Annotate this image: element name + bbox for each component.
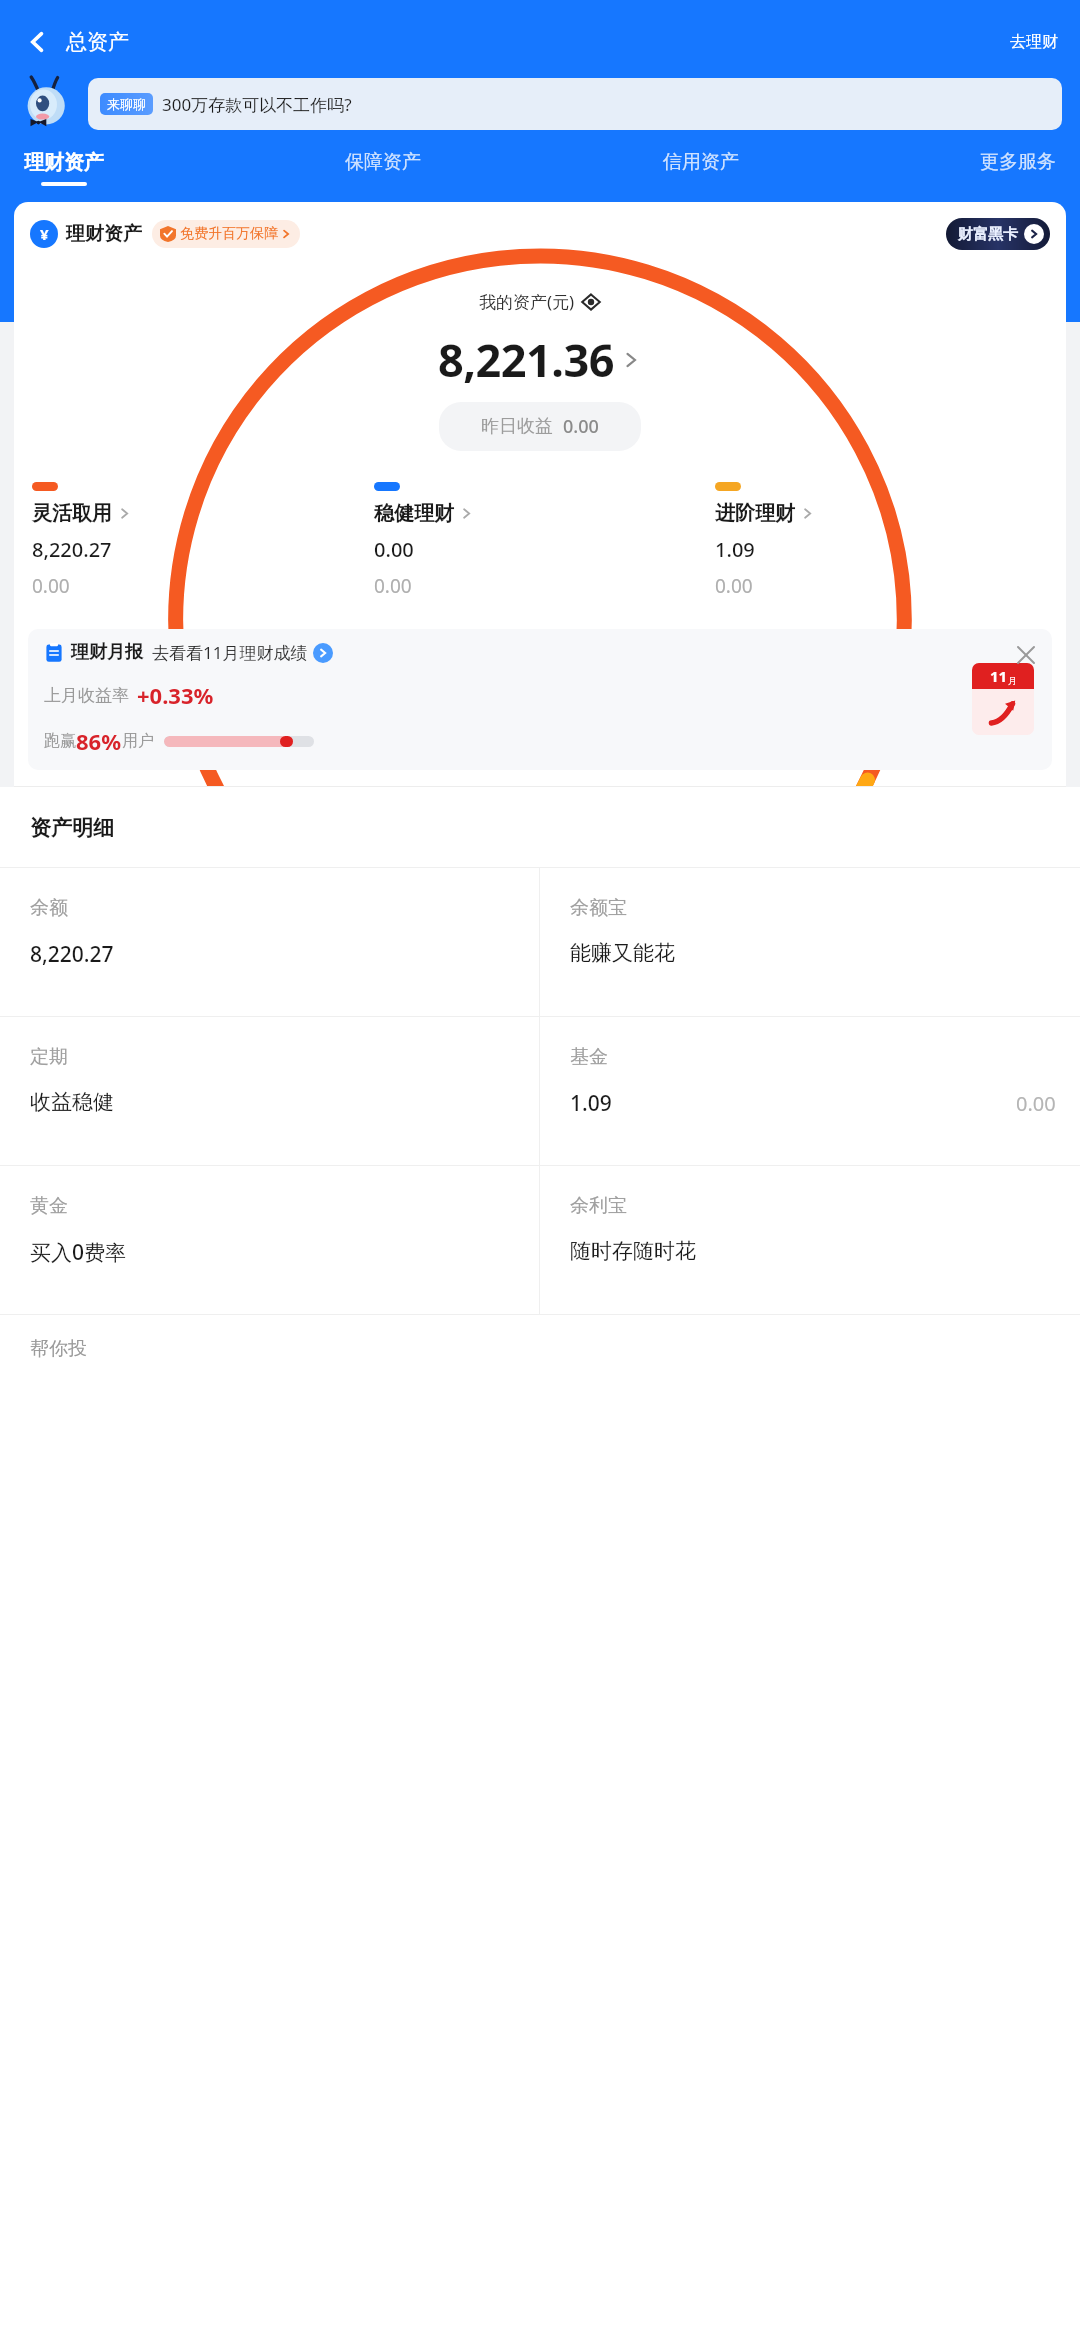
staticText: 保障资产 bbox=[345, 150, 421, 174]
staticText: 1.09 bbox=[715, 536, 755, 563]
staticText: 8,221.36 bbox=[438, 329, 614, 390]
staticText: +0.33% bbox=[137, 680, 214, 710]
staticText: 理财月报 bbox=[71, 641, 143, 664]
staticText: 0.00 bbox=[563, 414, 599, 439]
button[interactable]: 保障资产 bbox=[343, 150, 423, 185]
staticText: 更多服务 bbox=[980, 150, 1056, 174]
staticText: 财富黑卡 bbox=[958, 225, 1018, 244]
staticText: 余利宝 bbox=[570, 1194, 627, 1218]
button[interactable]: 我的资产(元) bbox=[479, 290, 601, 313]
staticText: 8,220.27 bbox=[30, 940, 114, 969]
button[interactable]: Back bbox=[16, 20, 60, 64]
staticText: 资产明细 bbox=[30, 815, 114, 841]
staticText: 去看看11月理财成绩 bbox=[152, 641, 308, 664]
staticText: 用户 bbox=[122, 731, 154, 751]
staticText: 能赚又能花 bbox=[570, 940, 675, 966]
button[interactable]: 信用资产 bbox=[661, 150, 741, 185]
staticText: 我的资产(元) bbox=[479, 290, 575, 313]
staticText: 8,220.27 bbox=[32, 536, 112, 563]
staticText: 稳健理财 bbox=[374, 501, 454, 526]
staticText: 进阶理财 bbox=[715, 501, 795, 526]
button[interactable]: 财富黑卡 bbox=[946, 218, 1050, 250]
button[interactable]: 基金 bbox=[540, 1017, 1080, 1165]
button[interactable]: 理财资产 bbox=[22, 150, 106, 186]
staticText: 基金 bbox=[570, 1045, 608, 1069]
staticText: 来聊聊 bbox=[107, 96, 146, 112]
staticText: 1.09 bbox=[570, 1089, 612, 1118]
button[interactable]: 更多服务 bbox=[978, 150, 1058, 185]
staticText: 跑赢 bbox=[44, 731, 76, 751]
staticText: 0.00 bbox=[715, 573, 753, 599]
staticText: ¥ bbox=[40, 224, 49, 244]
staticText: 灵活取用 bbox=[32, 501, 112, 526]
staticText: 收益稳健 bbox=[30, 1089, 114, 1115]
button[interactable]: 昨日收益 bbox=[439, 402, 641, 451]
staticText: 300万存款可以不工作吗? bbox=[162, 93, 352, 116]
button[interactable]: 黄金 bbox=[0, 1166, 539, 1314]
staticText: 11 bbox=[990, 666, 1008, 686]
staticText: 理财资产 bbox=[24, 150, 104, 175]
other: Toggle visibility bbox=[581, 292, 601, 312]
button[interactable]: 余额 bbox=[0, 868, 539, 1016]
staticText: 买入0费率 bbox=[30, 1238, 127, 1267]
button[interactable]: Close bbox=[1012, 641, 1040, 669]
staticText: 黄金 bbox=[30, 1194, 68, 1218]
staticText: 0.00 bbox=[1016, 1090, 1056, 1117]
staticText: 随时存随时花 bbox=[570, 1238, 696, 1264]
button[interactable]: 8,221.36 bbox=[438, 329, 642, 390]
staticText: 免费升百万保障 bbox=[180, 225, 278, 243]
button[interactable]: 灵活取用 bbox=[28, 476, 370, 605]
staticText: 总资产 bbox=[66, 29, 129, 55]
staticText: 0.00 bbox=[374, 573, 412, 599]
button[interactable]: 来聊聊 bbox=[88, 78, 1062, 130]
staticText: 月 bbox=[1008, 675, 1017, 686]
staticText: 0.00 bbox=[374, 536, 414, 563]
staticText: 0.00 bbox=[32, 573, 70, 599]
staticText: 理财资产 bbox=[66, 222, 142, 246]
staticText: 昨日收益 bbox=[481, 415, 553, 438]
button[interactable]: 进阶理财 bbox=[711, 476, 1052, 605]
button[interactable]: 免费升百万保障 bbox=[152, 220, 300, 248]
staticText: 去理财 bbox=[1010, 32, 1058, 52]
button[interactable]: 稳健理财 bbox=[370, 476, 711, 605]
button[interactable]: 定期 bbox=[0, 1017, 539, 1165]
button[interactable]: 去理财 bbox=[1004, 26, 1064, 58]
staticText: 86% bbox=[76, 726, 122, 756]
staticText: 余额 bbox=[30, 896, 68, 920]
button[interactable]: 理财月报 bbox=[28, 629, 1052, 770]
button[interactable]: 余利宝 bbox=[540, 1166, 1080, 1314]
staticText: 信用资产 bbox=[663, 150, 739, 174]
staticText: 帮你投 bbox=[30, 1337, 87, 1361]
staticText: 定期 bbox=[30, 1045, 68, 1069]
button[interactable]: 余额宝 bbox=[540, 868, 1080, 1016]
staticText: 余额宝 bbox=[570, 896, 627, 920]
staticText: 上月收益率 bbox=[44, 685, 129, 706]
